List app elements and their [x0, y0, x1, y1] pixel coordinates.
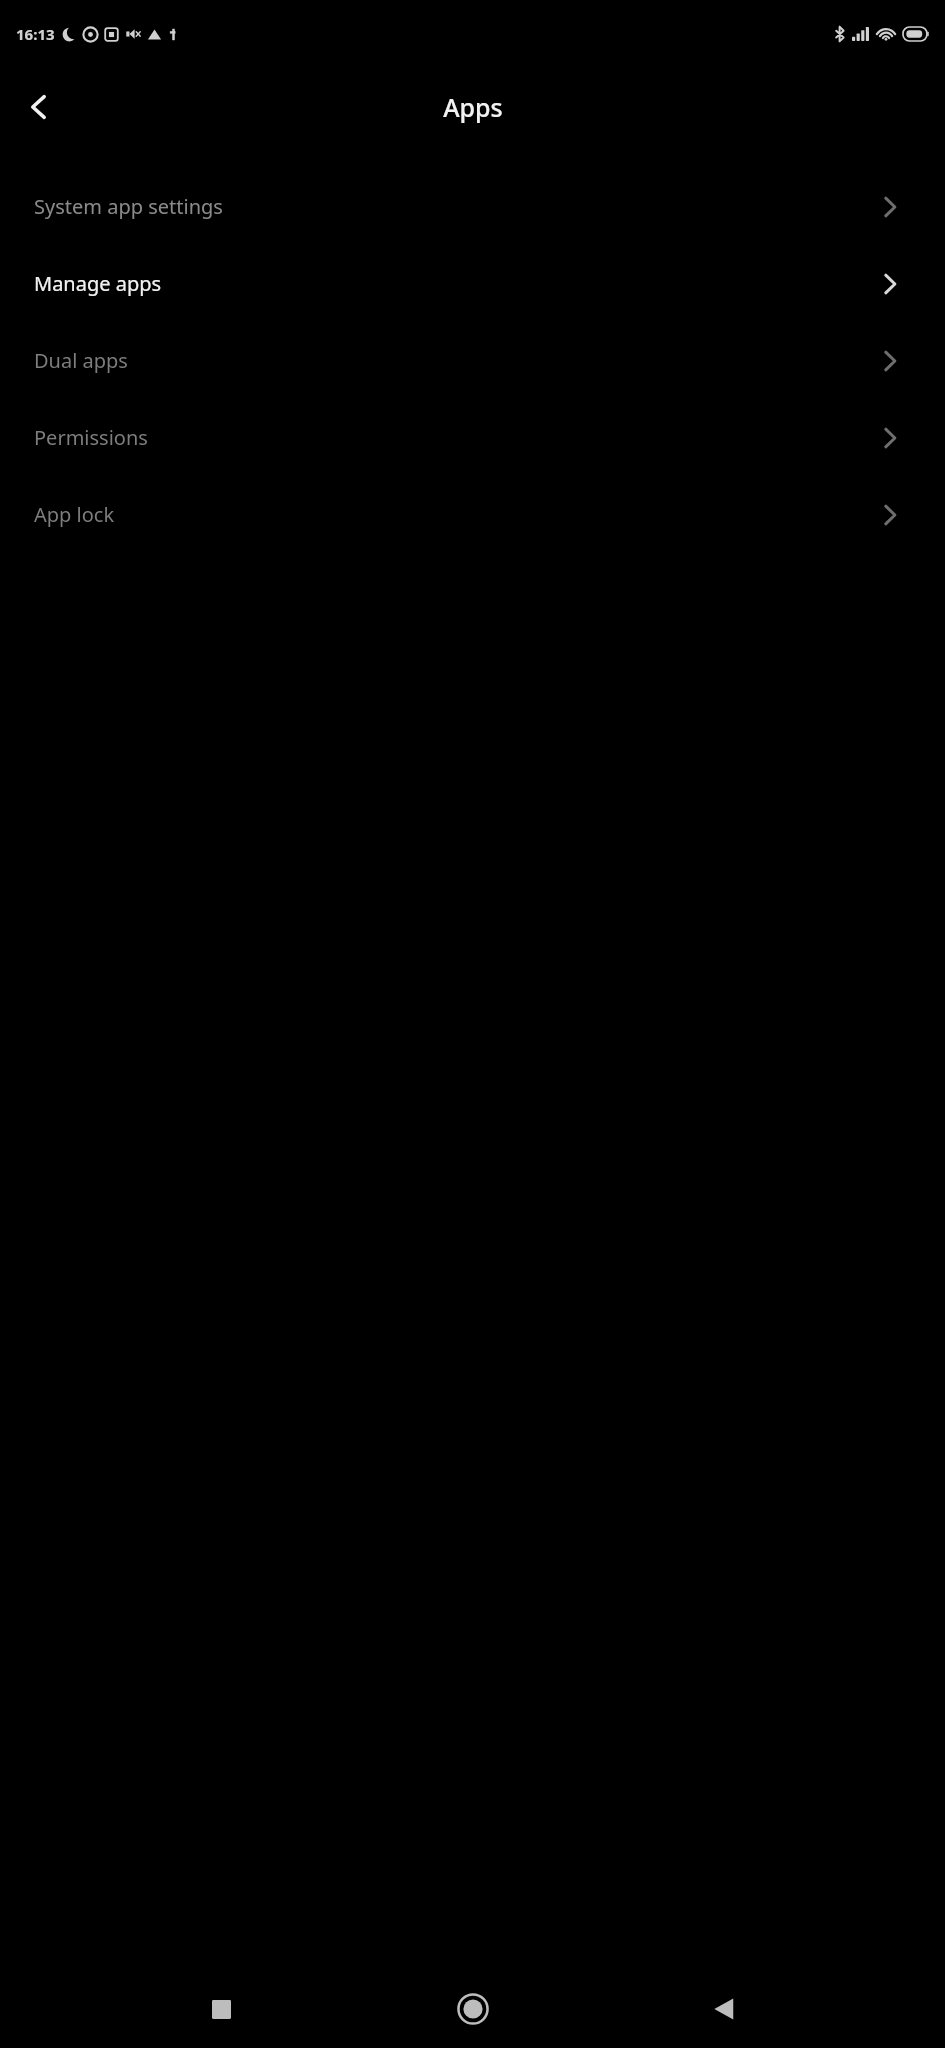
button[interactable]: Back — [12, 80, 66, 134]
staticText: Apps — [443, 90, 503, 124]
staticText: Permissions — [34, 424, 148, 451]
staticText: 16:13 — [16, 24, 55, 44]
button[interactable]: Back — [694, 1979, 754, 2039]
staticText: App lock — [34, 501, 115, 528]
staticText: System app settings — [34, 193, 223, 220]
button[interactable]: Recent apps — [191, 1979, 251, 2039]
staticText: Manage apps — [34, 270, 162, 297]
button[interactable]: System app settings — [0, 168, 945, 245]
button[interactable]: Home — [443, 1979, 503, 2039]
button[interactable]: Dual apps — [0, 322, 945, 399]
button[interactable]: Permissions — [0, 399, 945, 476]
button[interactable]: App lock — [0, 476, 945, 553]
button[interactable]: Manage apps — [0, 245, 945, 322]
staticText: Dual apps — [34, 347, 128, 374]
